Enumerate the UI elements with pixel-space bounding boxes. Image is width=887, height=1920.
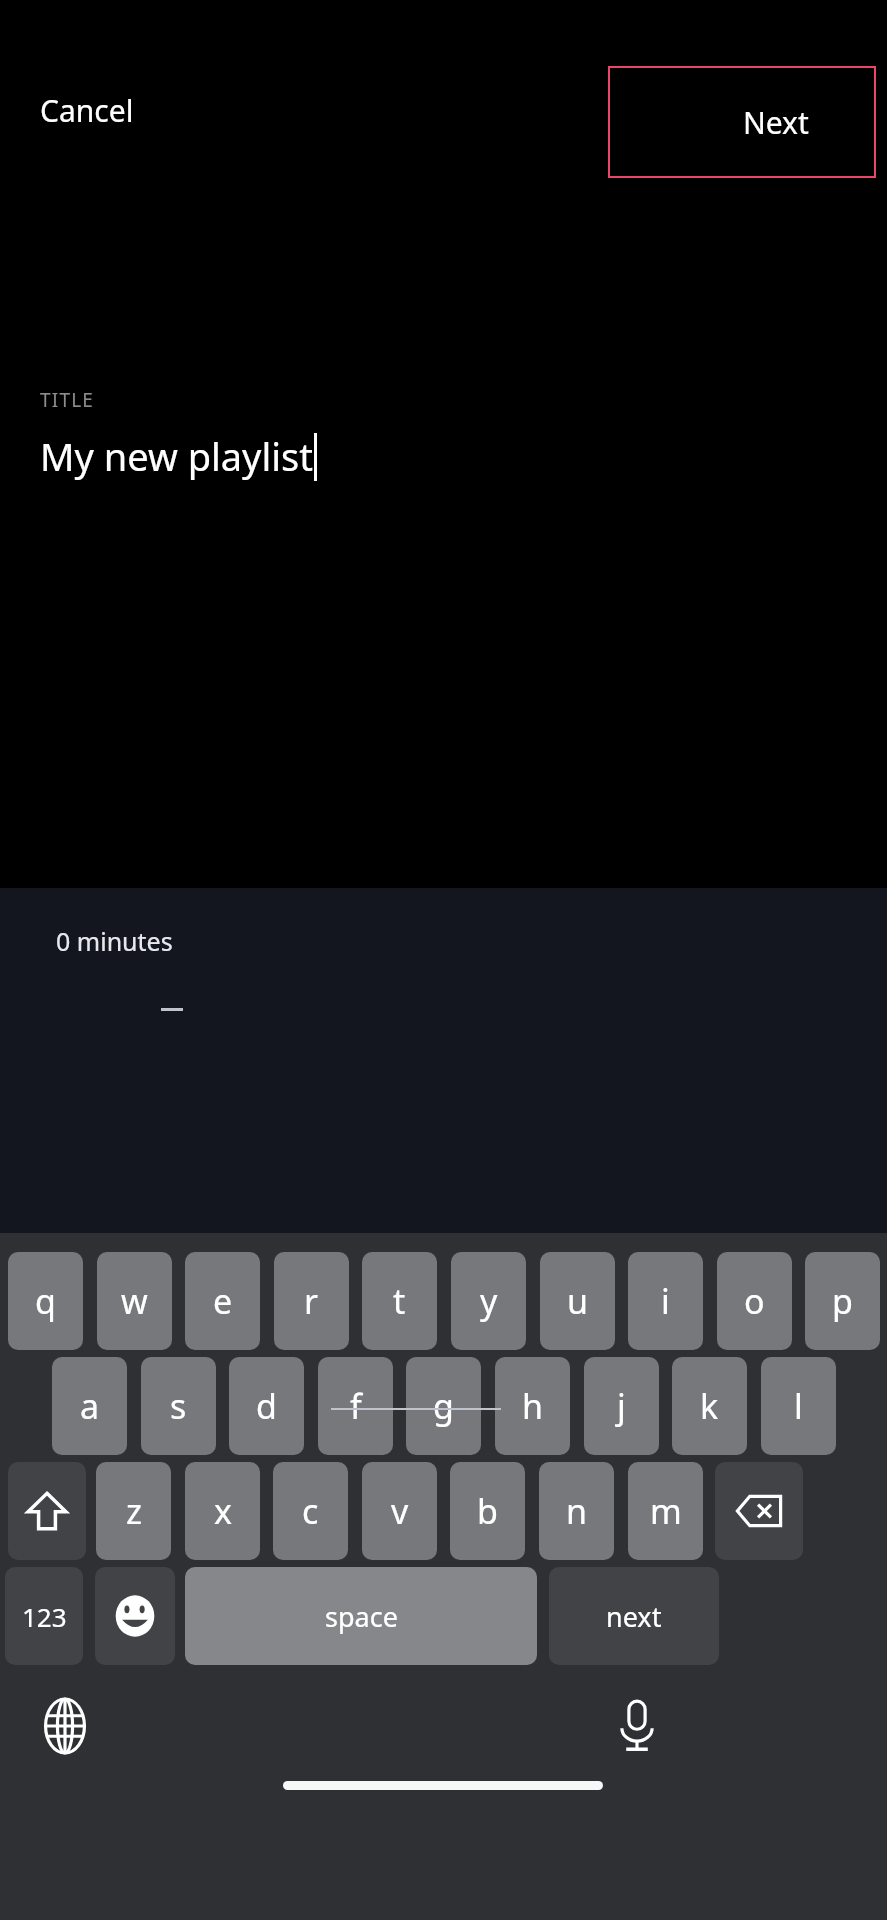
button[interactable]: g (406, 1357, 481, 1455)
button[interactable]: m (628, 1462, 703, 1560)
button[interactable]: j (584, 1357, 659, 1455)
staticText: o (744, 1278, 765, 1324)
staticText: My new playlist (40, 430, 314, 482)
staticText: 0 minutes (56, 924, 173, 958)
staticText: c (302, 1488, 319, 1534)
button[interactable]: x (185, 1462, 260, 1560)
staticText: d (256, 1383, 277, 1429)
button[interactable]: v (362, 1462, 437, 1560)
button[interactable]: Voice input (602, 1691, 672, 1761)
staticText: u (567, 1278, 589, 1324)
staticText: TITLE (40, 387, 95, 413)
button[interactable]: s (141, 1357, 216, 1455)
button[interactable]: r (274, 1252, 349, 1350)
staticText: e (213, 1278, 233, 1324)
button[interactable]: k (672, 1357, 747, 1455)
staticText: k (700, 1383, 719, 1429)
button[interactable]: Cancel (26, 78, 148, 143)
staticText: r (304, 1278, 319, 1324)
staticText: Next (743, 102, 809, 143)
staticText: space (325, 1598, 398, 1635)
button[interactable]: Numbers (5, 1567, 83, 1665)
staticText: x (214, 1488, 232, 1534)
button[interactable]: Change keyboard language (30, 1691, 100, 1761)
staticText: next (606, 1598, 662, 1635)
button[interactable]: o (717, 1252, 792, 1350)
button[interactable]: u (540, 1252, 615, 1350)
button[interactable]: Emoji (95, 1567, 175, 1665)
staticText: Cancel (40, 90, 134, 131)
staticText: f (350, 1383, 362, 1429)
staticText: g (433, 1383, 454, 1429)
button[interactable]: y (451, 1252, 526, 1350)
button[interactable]: f (318, 1357, 393, 1455)
button[interactable]: Next (608, 66, 876, 178)
staticText: j (617, 1383, 626, 1429)
staticText: n (566, 1488, 588, 1534)
staticText: s (170, 1383, 187, 1429)
button[interactable]: z (96, 1462, 171, 1560)
button[interactable]: Next (549, 1567, 719, 1665)
staticText: l (794, 1383, 803, 1429)
button[interactable]: Shift (8, 1462, 86, 1560)
button[interactable]: c (273, 1462, 348, 1560)
button[interactable]: w (97, 1252, 172, 1350)
button[interactable]: l (761, 1357, 836, 1455)
button[interactable]: p (805, 1252, 880, 1350)
staticText: h (522, 1383, 544, 1429)
staticText: w (121, 1278, 148, 1324)
staticText: a (80, 1383, 100, 1429)
button[interactable]: n (539, 1462, 614, 1560)
button[interactable]: h (495, 1357, 570, 1455)
button[interactable]: d (229, 1357, 304, 1455)
staticText: i (661, 1278, 670, 1324)
staticText: 123 (22, 1599, 67, 1634)
button[interactable]: Space (185, 1567, 537, 1665)
staticText: m (650, 1488, 682, 1534)
button[interactable]: t (362, 1252, 437, 1350)
staticText: q (35, 1278, 56, 1324)
staticText: t (393, 1278, 406, 1324)
button[interactable]: i (628, 1252, 703, 1350)
button[interactable]: b (450, 1462, 525, 1560)
staticText: b (477, 1488, 498, 1534)
staticText: p (832, 1278, 853, 1324)
button[interactable]: e (185, 1252, 260, 1350)
staticText: y (480, 1278, 498, 1324)
button[interactable]: Backspace (715, 1462, 803, 1560)
button[interactable]: a (52, 1357, 127, 1455)
staticText: v (391, 1488, 409, 1534)
button[interactable]: q (8, 1252, 83, 1350)
staticText: z (126, 1488, 142, 1534)
